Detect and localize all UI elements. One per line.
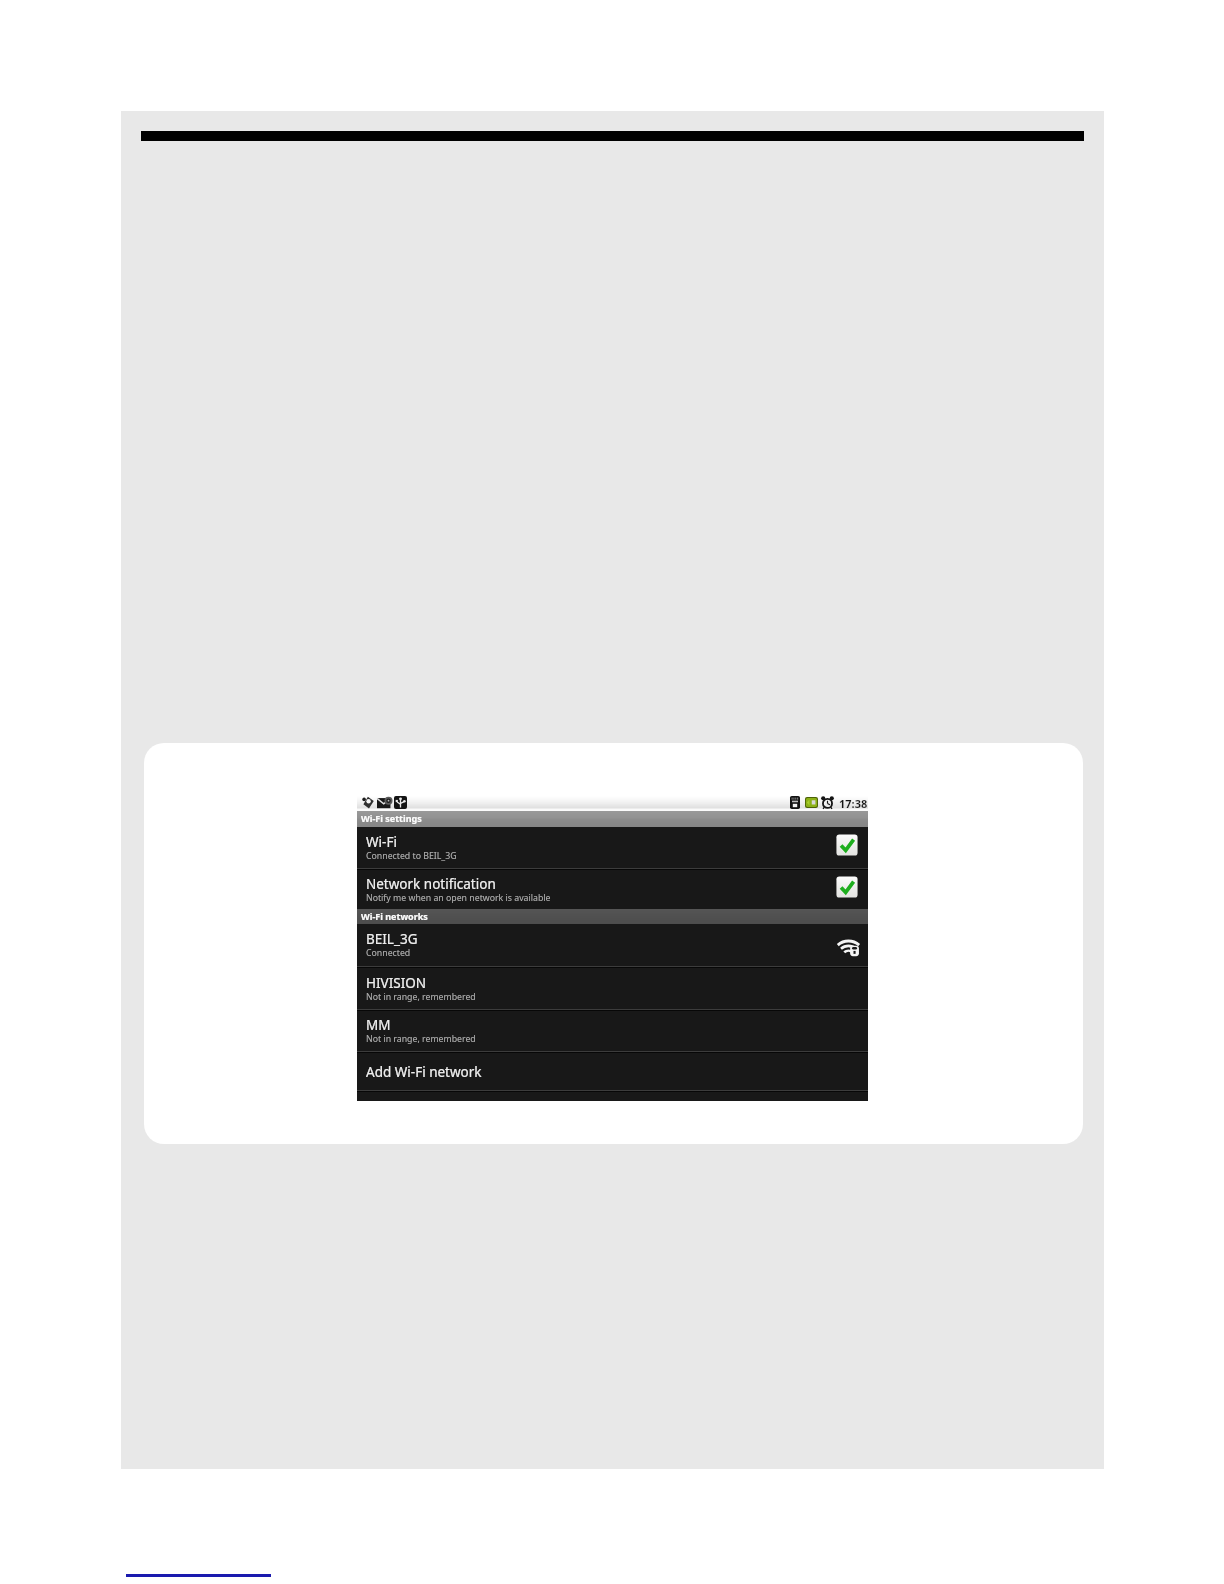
- staticText: Wi-Fi: [366, 833, 397, 851]
- staticText: Network notification: [366, 875, 496, 893]
- staticText: MM: [366, 1016, 391, 1034]
- staticText: Wi-Fi networks: [361, 910, 428, 922]
- staticText: Connected: [366, 947, 411, 959]
- button[interactable]: BEIL_3G: [357, 924, 868, 966]
- staticText: BEIL_3G: [366, 930, 418, 948]
- button[interactable]: Wi-Fi settings: [357, 811, 868, 827]
- button[interactable]: Network notification: [357, 870, 868, 909]
- staticText: Wi-Fi settings: [361, 812, 422, 824]
- button[interactable]: Toggle Network notification: [836, 876, 858, 898]
- button[interactable]: Wi-Fi: [357, 827, 868, 868]
- staticText: 17:38: [839, 796, 868, 811]
- button[interactable]: Wi-Fi networks: [357, 909, 868, 924]
- staticText: Notify me when an open network is availa…: [366, 892, 551, 904]
- button[interactable]: Add Wi-Fi network: [357, 1053, 868, 1090]
- button[interactable]: Toggle Wi-Fi: [836, 834, 858, 856]
- staticText: Connected to BEIL_3G: [366, 850, 457, 862]
- staticText: Not in range, remembered: [366, 1033, 476, 1045]
- other: Secured Wi-Fi network, full signal: [839, 936, 860, 957]
- button[interactable]: HIVISION: [357, 968, 868, 1009]
- button[interactable]: MM: [357, 1011, 868, 1051]
- staticText: Not in range, remembered: [366, 991, 476, 1003]
- staticText: Add Wi-Fi network: [366, 1063, 482, 1081]
- staticText: HIVISION: [366, 974, 427, 992]
